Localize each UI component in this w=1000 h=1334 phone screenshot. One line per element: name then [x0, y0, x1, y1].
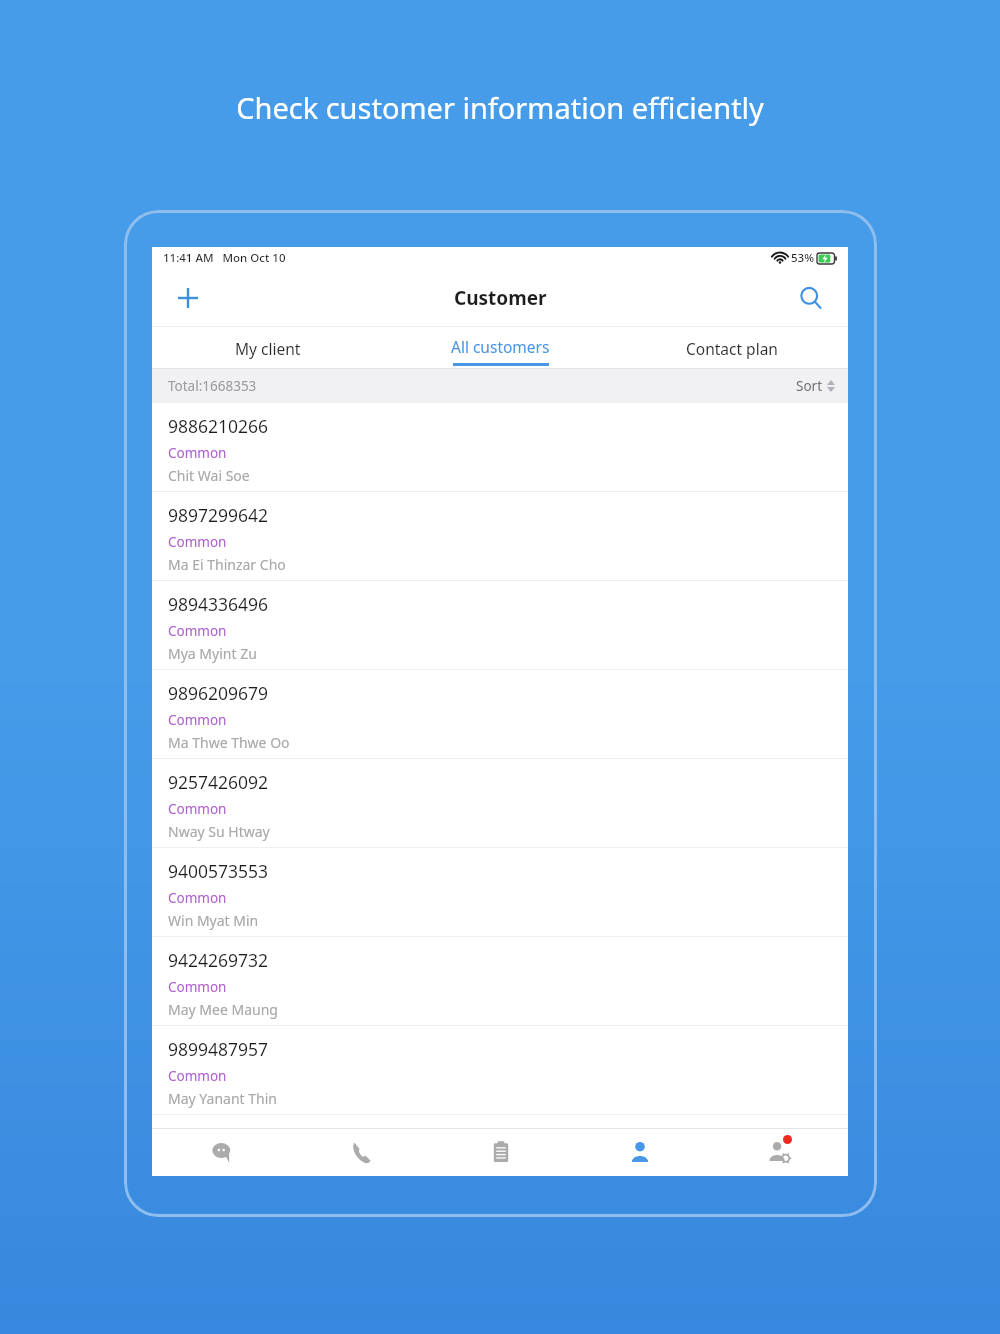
- button[interactable]: 9400573553: [152, 848, 848, 937]
- staticText: Common: [168, 889, 227, 907]
- staticText: 9257426092: [168, 770, 269, 794]
- button[interactable]: My client: [152, 327, 384, 369]
- staticText: Common: [168, 1067, 227, 1085]
- button[interactable]: 9894336496: [152, 581, 848, 670]
- staticText: 9897997997: [168, 1123, 269, 1136]
- button[interactable]: Tasks: [431, 1128, 570, 1176]
- staticText: Common: [168, 444, 227, 462]
- staticText: May Yanant Thin: [168, 1089, 277, 1108]
- button[interactable]: 9897299642: [152, 492, 848, 581]
- staticText: Customer: [454, 285, 547, 311]
- staticText: 9896209679: [168, 681, 269, 705]
- staticText: May Mee Maung: [168, 1000, 278, 1019]
- button[interactable]: 9899487957: [152, 1026, 848, 1115]
- staticText: All customers: [451, 336, 550, 357]
- staticText: 9894336496: [168, 592, 269, 616]
- staticText: Chit Wai Soe: [168, 466, 250, 485]
- button[interactable]: 9424269732: [152, 937, 848, 1026]
- button[interactable]: All customers: [384, 327, 616, 369]
- button[interactable]: Sort: [796, 377, 835, 395]
- staticText: 11:41 AM Mon Oct 10: [163, 250, 286, 266]
- staticText: 9897299642: [168, 503, 269, 527]
- staticText: Check customer information efficiently: [0, 88, 1000, 127]
- staticText: Common: [168, 800, 227, 818]
- staticText: Common: [168, 533, 227, 551]
- button[interactable]: Add customer: [164, 274, 212, 322]
- staticText: Ma Thwe Thwe Oo: [168, 733, 290, 752]
- staticText: 9899487957: [168, 1037, 269, 1061]
- button[interactable]: Messages: [152, 1128, 292, 1176]
- staticText: Mya Myint Zu: [168, 644, 257, 663]
- staticText: Common: [168, 711, 227, 729]
- button[interactable]: Manage: [709, 1128, 848, 1176]
- staticText: Common: [168, 622, 227, 640]
- button[interactable]: 9257426092: [152, 759, 848, 848]
- staticText: Win Myat Min: [168, 911, 259, 930]
- staticText: Ma Ei Thinzar Cho: [168, 555, 286, 574]
- button[interactable]: Customers: [570, 1128, 709, 1176]
- staticText: Common: [168, 978, 227, 996]
- button[interactable]: Contact plan: [616, 327, 848, 369]
- staticText: Total:1668353: [168, 377, 257, 395]
- staticText: 9424269732: [168, 948, 269, 972]
- button[interactable]: 9886210266: [152, 403, 848, 492]
- staticText: Sort: [796, 377, 823, 395]
- button[interactable]: 9896209679: [152, 670, 848, 759]
- staticText: 9400573553: [168, 859, 269, 883]
- staticText: My client: [235, 338, 301, 359]
- staticText: Contact plan: [686, 338, 778, 359]
- button[interactable]: Search: [787, 274, 835, 322]
- staticText: Nway Su Htway: [168, 822, 270, 841]
- button[interactable]: Calls: [292, 1128, 431, 1176]
- staticText: 9886210266: [168, 414, 269, 438]
- staticText: 53%: [791, 250, 814, 266]
